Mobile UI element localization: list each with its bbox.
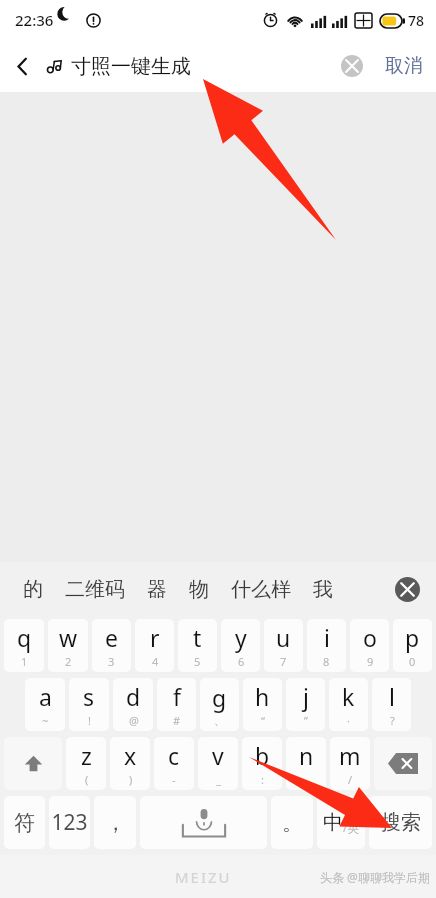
staticText: 7 — [280, 654, 287, 669]
staticText: s — [83, 681, 95, 712]
staticText: i — [324, 622, 330, 653]
button[interactable]: o — [350, 619, 389, 672]
staticText: 二维码 — [65, 577, 125, 602]
staticText: 头条 @聊聊我学后期 — [320, 869, 430, 885]
staticText: g — [212, 682, 227, 713]
staticText: o — [363, 622, 377, 653]
staticText: - — [172, 772, 176, 787]
button[interactable]: g — [200, 678, 239, 731]
button[interactable]: y — [221, 619, 260, 672]
button[interactable]: x — [110, 737, 150, 790]
button[interactable]: c — [154, 737, 194, 790]
button[interactable]: 取消 — [385, 40, 423, 92]
button[interactable]: p — [393, 619, 432, 672]
staticText: 3 — [108, 654, 115, 669]
button[interactable]: 的 — [12, 571, 54, 608]
staticText: d — [126, 681, 141, 712]
staticText: ) — [129, 772, 133, 787]
button[interactable]: ， — [94, 796, 136, 849]
staticText: 取消 — [385, 54, 423, 78]
button[interactable]: 我 — [302, 571, 344, 608]
button[interactable]: Back — [0, 40, 45, 92]
staticText: · — [347, 713, 350, 728]
button[interactable]: 二维码 — [54, 571, 136, 608]
button[interactable]: q — [4, 619, 44, 672]
staticText: k — [342, 681, 355, 712]
staticText: 22:36 — [15, 10, 54, 30]
button[interactable]: Clear text — [332, 46, 372, 86]
button[interactable]: Shift — [4, 737, 62, 790]
button[interactable]: l — [372, 678, 411, 731]
button[interactable]: n — [286, 737, 326, 790]
staticText: w — [59, 622, 78, 653]
button[interactable]: m — [330, 737, 370, 790]
button[interactable]: Backspace — [374, 737, 432, 790]
button[interactable]: i — [307, 619, 346, 672]
button[interactable]: 符 — [4, 796, 45, 849]
button[interactable]: Space — [140, 796, 267, 849]
staticText: l — [389, 681, 395, 712]
staticText: - — [305, 772, 309, 787]
button[interactable]: a — [25, 678, 65, 731]
staticText: 搜索 — [381, 810, 421, 835]
staticText: f — [173, 681, 181, 712]
staticText: 的 — [23, 577, 43, 602]
staticText: ? — [390, 713, 395, 728]
staticText: MEIZU — [175, 867, 232, 887]
button[interactable]: 123 — [49, 796, 90, 849]
staticText: h — [255, 681, 270, 712]
button[interactable]: s — [69, 678, 109, 731]
staticText: 器 — [147, 577, 167, 602]
button[interactable]: f — [157, 678, 196, 731]
button[interactable]: z — [66, 737, 106, 790]
staticText: “ — [261, 713, 265, 728]
button[interactable]: b — [242, 737, 282, 790]
staticText: 1 — [21, 654, 28, 669]
button[interactable]: Switch Chinese English — [317, 796, 365, 849]
button[interactable]: 什么样 — [220, 571, 302, 608]
staticText: 4 — [152, 654, 159, 669]
button[interactable]: d — [113, 678, 153, 731]
staticText: 78 — [408, 11, 425, 30]
staticText: @ — [129, 713, 139, 728]
button[interactable]: k — [329, 678, 368, 731]
staticText: z — [81, 740, 92, 771]
staticText: 9 — [367, 654, 374, 669]
staticText: 什么样 — [231, 577, 291, 602]
staticText: 寸照一键生成 — [71, 54, 191, 79]
staticText: / — [348, 772, 353, 787]
staticText: 2 — [65, 654, 72, 669]
staticText: 物 — [189, 577, 209, 602]
button[interactable]: h — [243, 678, 282, 731]
staticText: p — [405, 622, 420, 653]
staticText: y — [235, 622, 247, 653]
staticText: b — [255, 740, 270, 771]
staticText: ! — [88, 713, 91, 728]
staticText: ， — [105, 810, 126, 836]
staticText: 123 — [51, 808, 88, 837]
button[interactable]: v — [198, 737, 238, 790]
staticText: ~ — [42, 713, 49, 728]
button[interactable]: j — [286, 678, 325, 731]
button[interactable]: 器 — [136, 571, 178, 608]
button[interactable]: 搜索 — [369, 796, 432, 849]
staticText: q — [17, 622, 32, 653]
staticText: 6 — [238, 654, 245, 669]
button[interactable]: 物 — [178, 571, 220, 608]
staticText: 、 — [214, 714, 225, 728]
button[interactable]: t — [178, 619, 217, 672]
staticText: # — [173, 713, 181, 728]
button[interactable]: e — [92, 619, 131, 672]
button[interactable]: r — [135, 619, 174, 672]
button[interactable]: w — [48, 619, 88, 672]
button[interactable]: Hide suggestions — [388, 570, 426, 608]
staticText: _ — [216, 772, 221, 787]
staticText: x — [124, 740, 137, 771]
staticText: n — [299, 740, 314, 771]
staticText: e — [105, 622, 118, 653]
staticText: 符 — [14, 810, 35, 836]
staticText: a — [39, 681, 52, 712]
staticText: 5 — [194, 654, 201, 669]
button[interactable]: u — [264, 619, 303, 672]
button[interactable]: 。 — [271, 796, 313, 849]
